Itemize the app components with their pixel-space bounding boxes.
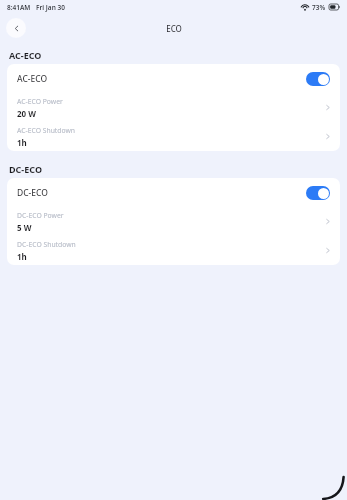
staticText: 8:41AM	[7, 3, 31, 12]
staticText: Fri Jan 30	[36, 3, 65, 12]
staticText: DC-ECO	[17, 187, 48, 199]
staticText: 1h	[17, 251, 27, 262]
staticText: AC-ECO Power	[17, 97, 63, 106]
staticText: AC-ECO Shutdown	[17, 126, 75, 135]
button[interactable]: Toggle on	[306, 186, 330, 200]
button[interactable]: DC-ECO Shutdown	[7, 236, 340, 265]
staticText: ECO	[166, 23, 182, 34]
button[interactable]: Toggle on	[306, 72, 330, 86]
button[interactable]: DC-ECO Power	[7, 207, 340, 236]
staticText: DC-ECO Power	[17, 211, 64, 220]
button[interactable]: AC-ECO	[7, 64, 340, 93]
staticText: DC-ECO Shutdown	[17, 240, 76, 249]
button[interactable]: AC-ECO Shutdown	[7, 122, 340, 151]
staticText: AC-ECO	[17, 73, 48, 85]
button[interactable]: DC-ECO	[7, 178, 340, 207]
staticText: 20 W	[17, 108, 36, 119]
staticText: 73%	[312, 3, 326, 12]
staticText: 5 W	[17, 222, 32, 233]
button[interactable]: Back	[6, 18, 26, 38]
staticText: 1h	[17, 137, 27, 148]
button[interactable]: AC-ECO Power	[7, 93, 340, 122]
staticText: DC-ECO	[9, 163, 43, 175]
staticText: AC-ECO	[9, 49, 42, 61]
